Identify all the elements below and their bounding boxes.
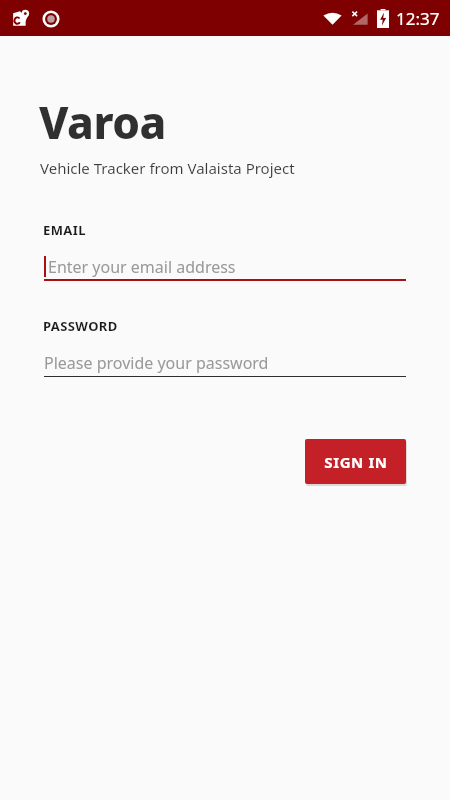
staticText: Enter your email address xyxy=(48,256,236,278)
staticText: SIGN IN xyxy=(324,452,388,472)
button[interactable]: Password input xyxy=(44,349,406,377)
staticText: Varoa xyxy=(39,92,166,152)
button[interactable]: SIGN IN xyxy=(305,439,406,484)
staticText: Vehicle Tracker from Valaista Project xyxy=(40,158,295,178)
staticText: Please provide your password xyxy=(44,352,269,374)
staticText: PASSWORD xyxy=(43,317,118,335)
button[interactable]: Email address input xyxy=(44,253,406,281)
staticText: EMAIL xyxy=(43,221,86,239)
staticText: 12:37 xyxy=(396,7,440,30)
